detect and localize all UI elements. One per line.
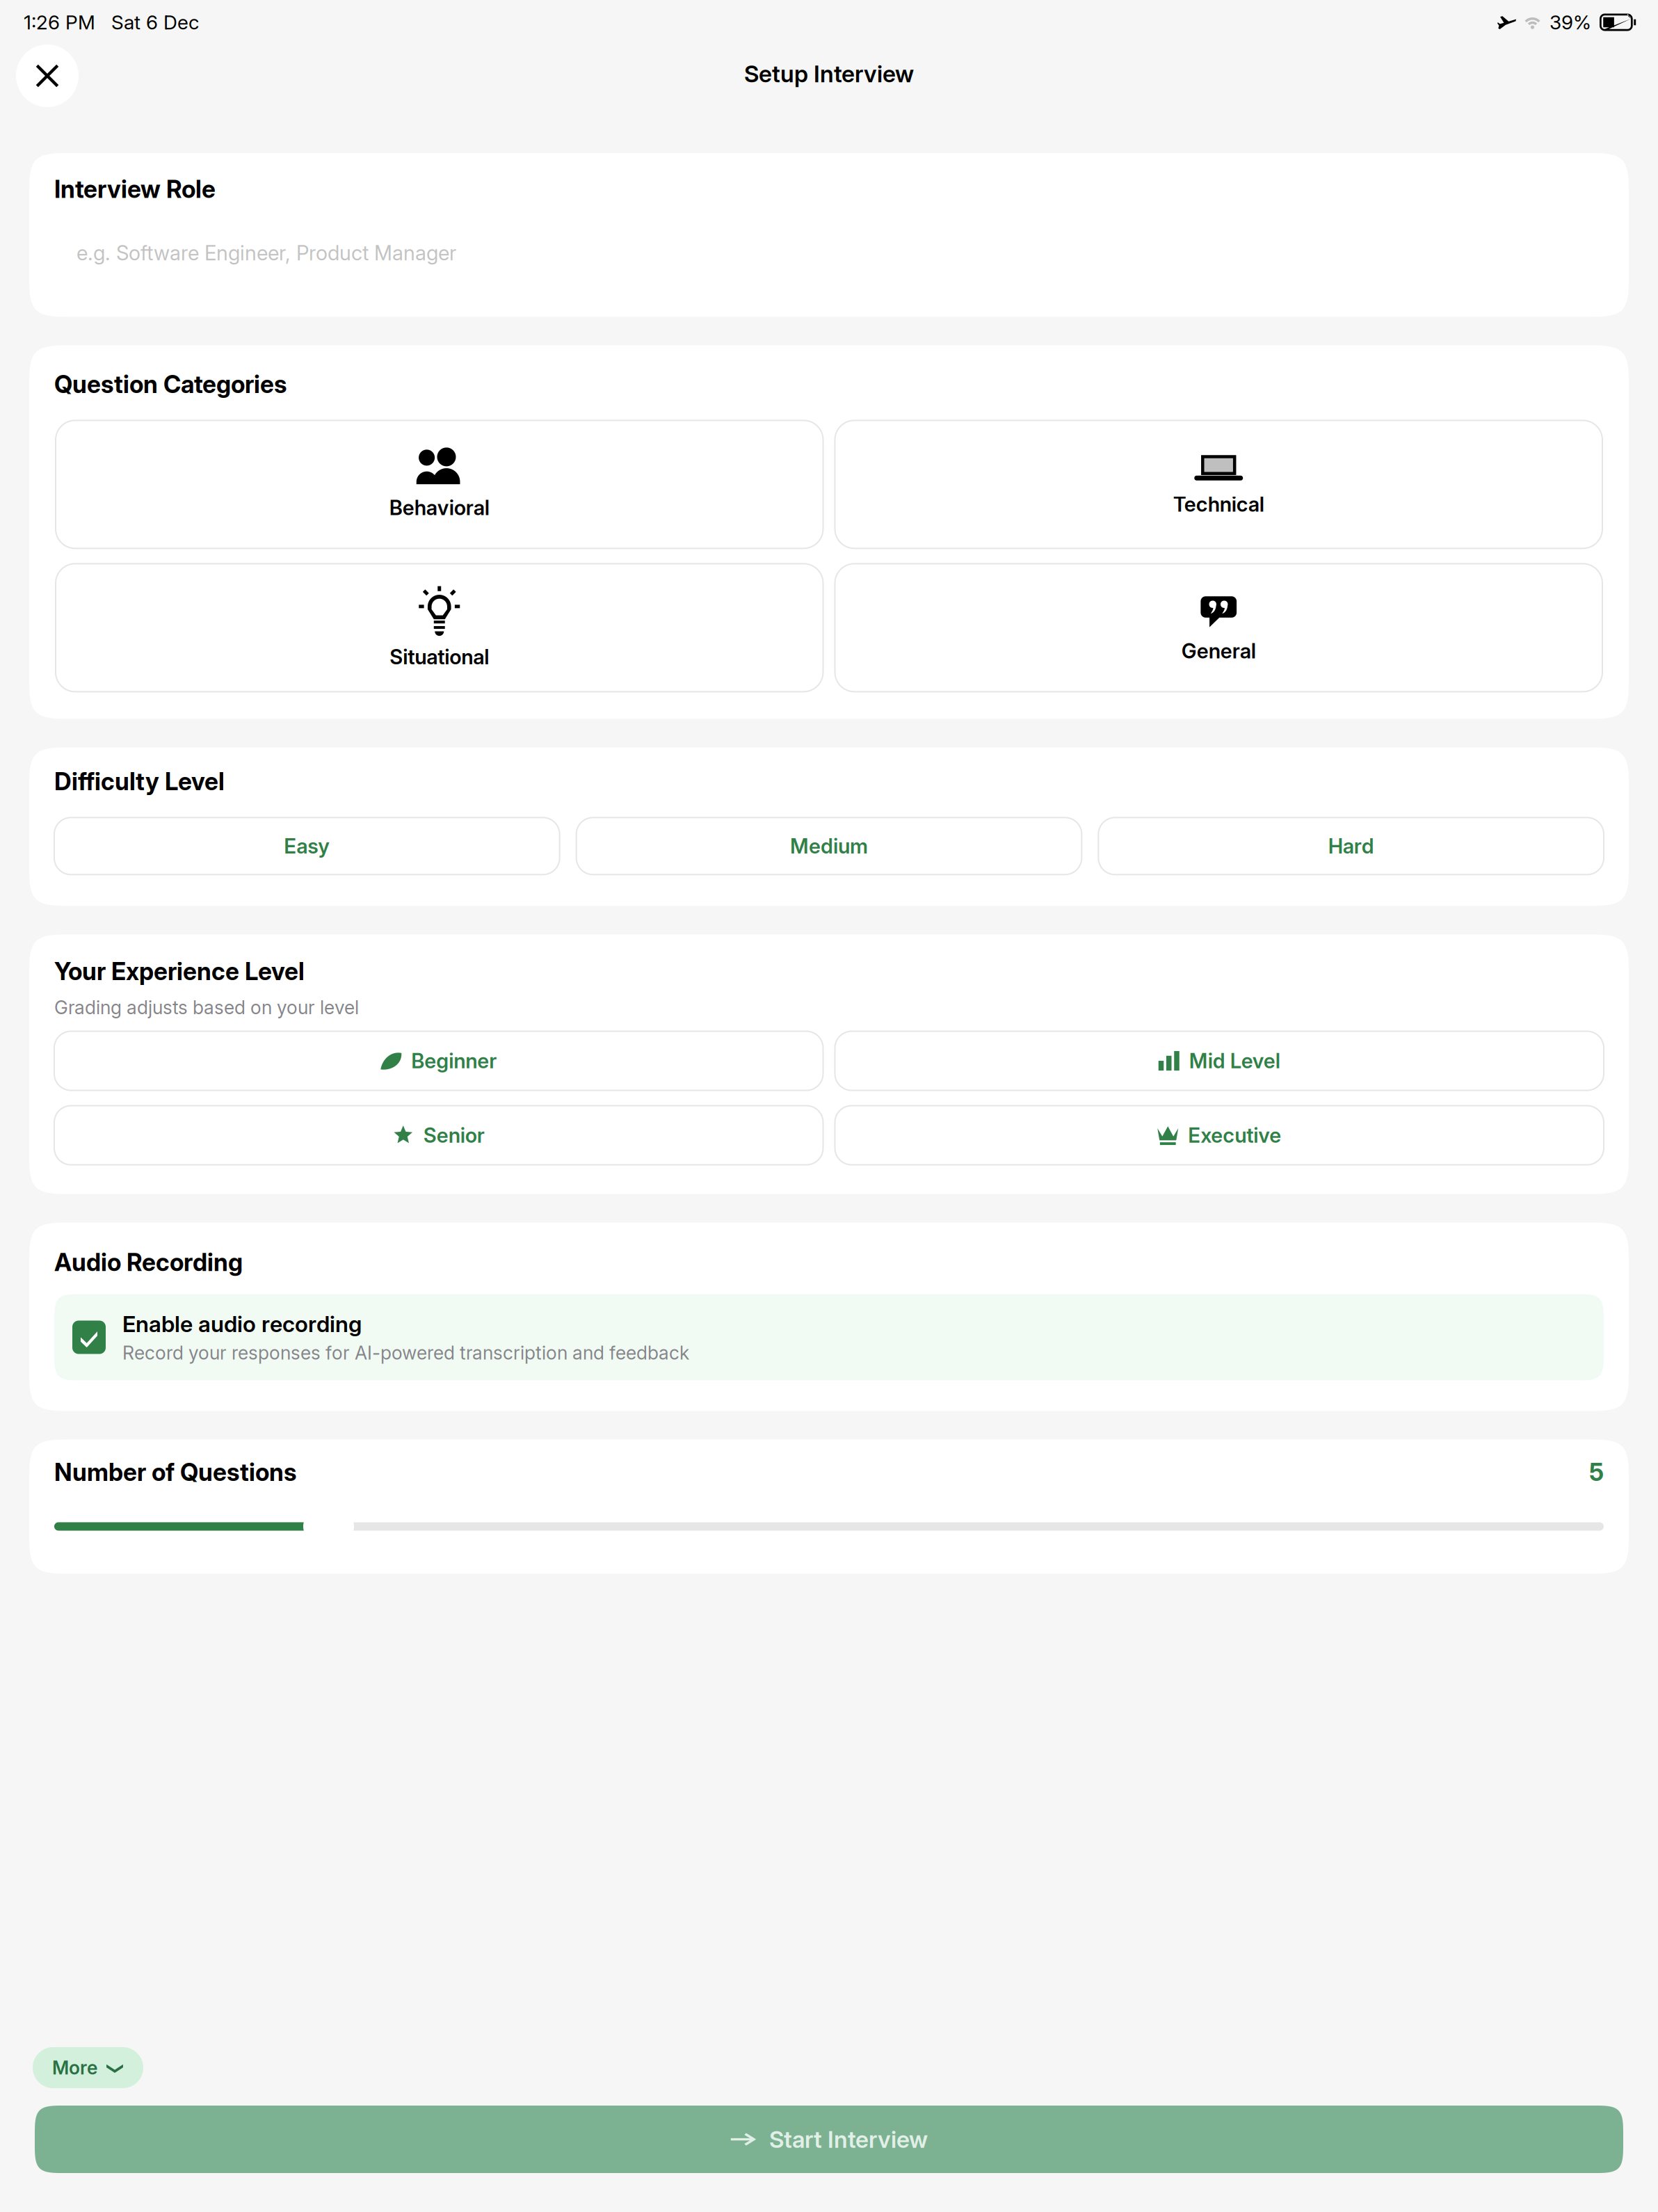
button[interactable]: Close [16, 45, 79, 107]
staticText: Medium [790, 834, 868, 858]
button[interactable]: Start Interview [35, 2106, 1623, 2173]
button[interactable]: Technical [835, 420, 1602, 548]
staticText: Hard [1328, 834, 1374, 858]
staticText: e.g. Software Engineer, Product Manager [77, 241, 456, 265]
staticText: General [1181, 639, 1256, 663]
button[interactable]: Hard [1098, 818, 1604, 875]
staticText: Situational [390, 645, 489, 669]
staticText: Your Experience Level [54, 957, 305, 986]
staticText: Record your responses for AI-powered tra… [122, 1342, 689, 1364]
staticText: Interview Role [54, 175, 216, 204]
button[interactable]: More [33, 2047, 143, 2088]
staticText: 5 [1589, 1458, 1604, 1487]
button[interactable]: Behavioral [56, 420, 823, 548]
staticText: 1:26 PM [24, 11, 95, 34]
staticText: Grading adjusts based on your level [54, 996, 359, 1019]
staticText: Number of Questions [54, 1458, 296, 1487]
button[interactable]: Situational [56, 564, 823, 692]
button[interactable]: Easy [54, 818, 560, 875]
staticText: Audio Recording [54, 1248, 243, 1277]
staticText: Executive [1188, 1123, 1281, 1148]
staticText: Behavioral [389, 495, 489, 520]
staticText: More [52, 2056, 97, 2079]
button[interactable]: Medium [576, 818, 1082, 875]
button[interactable]: Beginner [54, 1031, 823, 1090]
button[interactable]: Enable audio recording [54, 1294, 1604, 1380]
staticText: Enable audio recording [122, 1311, 362, 1337]
staticText: Question Categories [54, 370, 287, 399]
button[interactable]: General [835, 564, 1602, 692]
staticText: Beginner [411, 1048, 497, 1073]
staticText: Sat 6 Dec [111, 11, 199, 34]
staticText: Easy [284, 834, 330, 858]
staticText: Setup Interview [744, 60, 914, 88]
staticText: Start Interview [769, 2125, 928, 2153]
button[interactable]: Mid Level [835, 1031, 1604, 1090]
staticText: Technical [1173, 492, 1264, 517]
staticText: Mid Level [1189, 1048, 1280, 1073]
button[interactable]: Executive [835, 1106, 1604, 1165]
staticText: Senior [423, 1123, 485, 1148]
button[interactable]: Senior [54, 1106, 823, 1165]
staticText: 39% [1550, 11, 1591, 34]
staticText: Difficulty Level [54, 767, 225, 796]
